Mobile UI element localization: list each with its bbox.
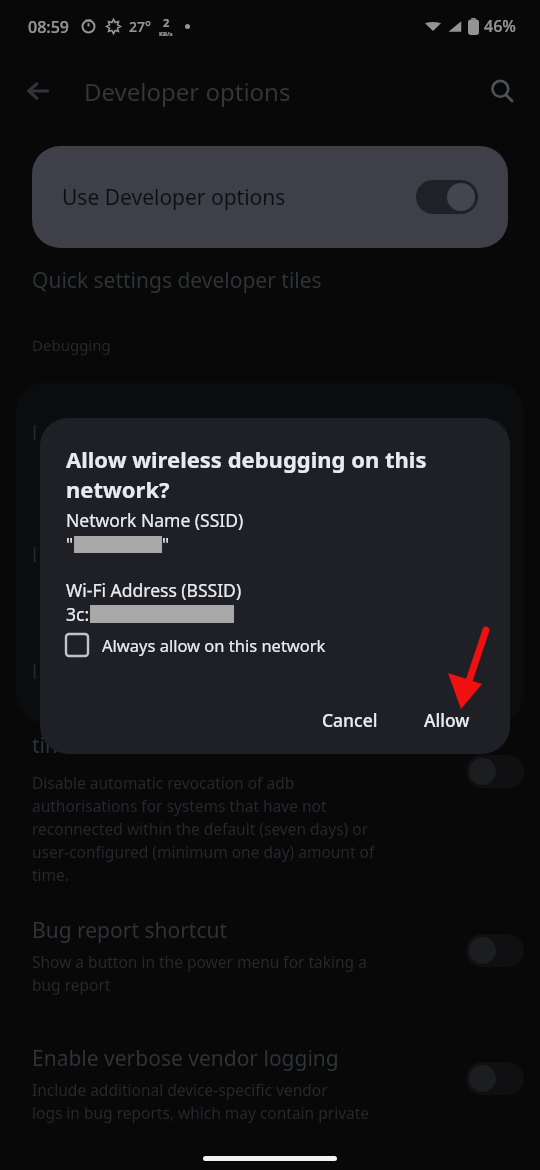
staticText: 3c: — [66, 602, 90, 626]
staticText: l — [32, 419, 38, 446]
staticText: 08:59 — [28, 16, 69, 38]
button[interactable]: Cancel — [308, 700, 392, 740]
staticText: Cancel — [322, 708, 378, 732]
staticText: 27° — [129, 17, 151, 36]
staticText: Bug report shortcut — [32, 916, 228, 945]
staticText: 2 — [163, 15, 170, 30]
staticText: Always allow on this network — [102, 634, 326, 656]
staticText: 46% — [484, 15, 516, 37]
button[interactable]: Use Developer options — [32, 146, 508, 248]
staticText: Use Developer options — [62, 183, 286, 212]
staticText: l — [32, 658, 38, 685]
staticText: Quick settings developer tiles — [32, 266, 322, 295]
staticText: timeout — [32, 731, 110, 760]
staticText: " — [162, 532, 170, 556]
staticText: KB/s — [159, 30, 173, 38]
staticText: Disable automatic revocation of adb auth… — [32, 772, 375, 886]
staticText: Include additional device-specific vendo… — [32, 1079, 370, 1124]
button[interactable]: timeout — [0, 737, 540, 886]
staticText: Allow wireless debugging on this network… — [66, 444, 427, 504]
button[interactable]: Always allow on this network — [66, 634, 326, 656]
staticText: Debugging — [32, 335, 111, 355]
button[interactable]: Allow — [410, 700, 484, 740]
staticText: Enable verbose vendor logging — [32, 1044, 339, 1073]
staticText: Allow — [424, 708, 470, 732]
staticText: Developer options — [84, 75, 291, 108]
button[interactable]: Bug report shortcut — [0, 916, 540, 996]
staticText: Show a button in the power menu for taki… — [32, 951, 367, 996]
button[interactable]: Enable verbose vendor logging — [0, 1044, 540, 1124]
button[interactable]: Search — [478, 67, 526, 115]
staticText: Network Name (SSID) — [66, 508, 244, 532]
button[interactable]: Back — [14, 67, 62, 115]
staticText: Wi-Fi Address (BSSID) — [66, 578, 242, 602]
staticText: " — [66, 532, 74, 556]
staticText: l — [32, 541, 38, 568]
